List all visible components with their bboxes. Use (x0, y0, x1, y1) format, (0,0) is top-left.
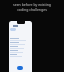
button[interactable] (10, 28, 16, 31)
button[interactable] (10, 54, 32, 58)
button[interactable] (10, 46, 32, 50)
staticText: seen before by existing (13, 2, 51, 7)
staticText: coding challenges (17, 7, 47, 12)
button[interactable] (10, 38, 32, 42)
button[interactable] (10, 42, 32, 46)
button[interactable] (10, 50, 32, 54)
button[interactable]: Action (17, 66, 23, 70)
